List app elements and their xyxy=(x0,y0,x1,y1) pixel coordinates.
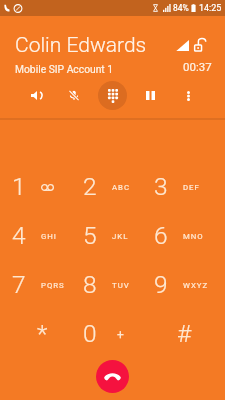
staticText: 84% xyxy=(173,3,189,13)
button[interactable]: * xyxy=(0,309,71,358)
staticText: * xyxy=(37,319,48,348)
button[interactable]: 8 xyxy=(71,260,142,309)
staticText: 9 xyxy=(154,270,168,299)
staticText: Mobile SIP Account 1 xyxy=(15,63,114,75)
button[interactable]: Speaker xyxy=(18,79,55,112)
staticText: DEF xyxy=(183,183,200,192)
staticText: JKL xyxy=(112,232,129,241)
staticText: 8 xyxy=(83,270,97,299)
staticText: + xyxy=(117,328,124,342)
button[interactable]: Hold xyxy=(131,79,169,112)
staticText: # xyxy=(177,319,192,348)
button[interactable]: 5 xyxy=(71,211,142,260)
staticText: 4 xyxy=(12,221,26,250)
staticText: Colin Edwards xyxy=(15,33,147,58)
button[interactable]: 6 xyxy=(142,211,213,260)
staticText: MNO xyxy=(183,232,204,241)
button[interactable]: Dialpad xyxy=(93,79,131,112)
button[interactable]: 9 xyxy=(142,260,213,309)
staticText: 1 xyxy=(12,172,26,201)
staticText: 5 xyxy=(83,221,97,250)
staticText: 6 xyxy=(154,221,168,250)
staticText: 0 xyxy=(83,319,97,348)
staticText: TUV xyxy=(112,281,130,290)
staticText: ABC xyxy=(112,183,131,192)
button[interactable]: End call xyxy=(96,360,129,393)
button[interactable]: 4 xyxy=(0,211,71,260)
staticText: WXYZ xyxy=(183,281,209,290)
button[interactable]: More options xyxy=(169,79,207,112)
staticText: 00:37 xyxy=(183,60,212,73)
staticText: 7 xyxy=(12,270,26,299)
button[interactable]: 0 xyxy=(71,309,142,358)
button[interactable]: Mute xyxy=(55,79,93,112)
staticText: 3 xyxy=(154,172,168,201)
staticText: 2 xyxy=(83,172,97,201)
button[interactable]: 2 xyxy=(71,162,142,211)
button[interactable]: 3 xyxy=(142,162,213,211)
button[interactable]: 1 xyxy=(0,162,71,211)
staticText: PQRS xyxy=(41,281,65,290)
staticText: 14:25 xyxy=(199,3,222,14)
button[interactable]: # xyxy=(142,309,213,358)
button[interactable]: 7 xyxy=(0,260,71,309)
staticText: GHI xyxy=(41,232,57,241)
